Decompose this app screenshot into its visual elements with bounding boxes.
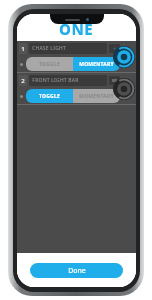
button[interactable]: Done bbox=[30, 263, 123, 278]
staticText: 2 bbox=[21, 77, 25, 85]
staticText: FRONT LIGHT BAR bbox=[32, 77, 79, 84]
staticText: MOMENTARY bbox=[79, 93, 114, 100]
button[interactable]: Edit channel 1 bbox=[109, 44, 120, 53]
staticText: TOGGLE bbox=[39, 61, 60, 68]
button[interactable]: TOGGLE bbox=[26, 89, 73, 103]
staticText: MOMENTARY bbox=[79, 61, 114, 68]
staticText: 1 bbox=[21, 45, 25, 53]
staticText: ONE bbox=[59, 19, 94, 39]
button[interactable]: Dimmer knob 1 bbox=[113, 46, 135, 68]
button[interactable]: MOMENTARY bbox=[73, 57, 120, 71]
button[interactable]: TOGGLE bbox=[26, 57, 73, 71]
button[interactable]: MOMENTARY bbox=[73, 89, 120, 103]
button[interactable]: Dimmer knob 2 bbox=[113, 78, 135, 100]
button[interactable]: Edit channel 2 bbox=[109, 76, 120, 85]
staticText: TOGGLE bbox=[39, 93, 60, 100]
staticText: CHASE LIGHT bbox=[32, 45, 66, 52]
button[interactable]: CHASE LIGHT bbox=[29, 43, 107, 54]
button[interactable]: FRONT LIGHT BAR bbox=[29, 75, 107, 86]
staticText: Done bbox=[68, 266, 86, 276]
